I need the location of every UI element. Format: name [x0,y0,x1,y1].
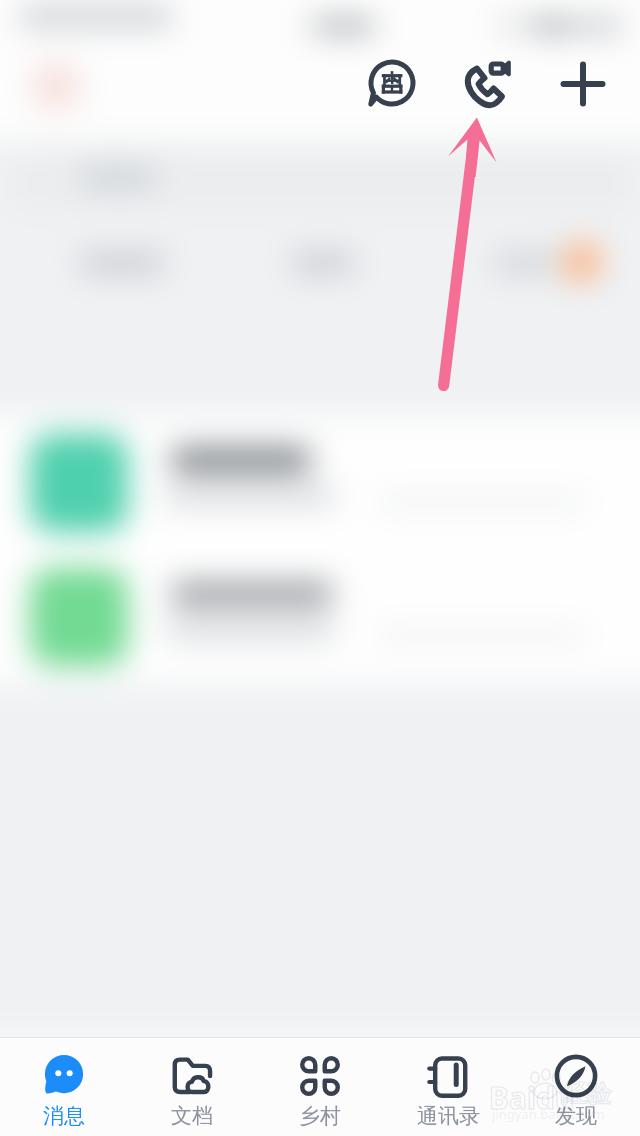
staticText: 乡村 [299,1103,341,1129]
button[interactable]: 消息 [0,1038,128,1136]
button[interactable]: 发现 [512,1038,640,1136]
button[interactable]: 文档 [128,1038,256,1136]
staticText: Baidu [489,1077,575,1118]
staticText: 通讯录 [417,1103,480,1129]
button[interactable]: Secret chat [356,47,428,119]
staticText: jingyan.baidu.com [492,1105,605,1123]
button[interactable]: 乡村 [256,1038,384,1136]
button[interactable]: Add [549,50,617,118]
staticText: 文档 [171,1103,213,1129]
button[interactable]: 通讯录 [384,1038,512,1136]
button[interactable]: Video call [451,48,523,120]
staticText: 消息 [43,1103,85,1129]
staticText: 发现 [555,1103,597,1129]
staticText: 经验 [563,1079,611,1109]
